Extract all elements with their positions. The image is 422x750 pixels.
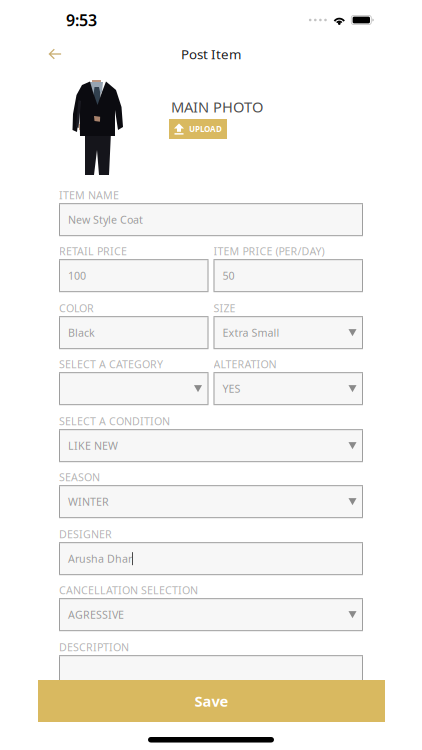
staticText: SELECT A CATEGORY	[59, 357, 163, 371]
button[interactable]: AGRESSIVE	[59, 598, 363, 631]
staticText: SIZE	[213, 301, 235, 315]
button[interactable]	[59, 372, 208, 405]
staticText: New Style Coat	[68, 213, 143, 227]
staticText: Black	[68, 326, 95, 340]
button[interactable]: Save	[38, 680, 385, 722]
button[interactable]: WINTER	[59, 485, 363, 518]
staticText: YES	[222, 382, 240, 396]
button[interactable]: LIKE NEW	[59, 429, 363, 462]
staticText: ITEM NAME	[59, 188, 119, 202]
staticText: COLOR	[59, 301, 94, 315]
button[interactable]: Extra Small	[213, 316, 363, 349]
staticText: ITEM PRICE (PER/DAY)	[213, 244, 324, 258]
staticText: LIKE NEW	[68, 439, 118, 453]
staticText: RETAIL PRICE	[59, 244, 127, 258]
button[interactable]	[59, 655, 363, 688]
button[interactable]: Back	[40, 41, 70, 67]
staticText: ALTERATION	[213, 357, 276, 371]
button[interactable]: Arusha Dhar	[59, 542, 363, 575]
staticText: Extra Small	[222, 326, 279, 340]
staticText: SELECT A CONDITION	[59, 414, 170, 428]
staticText: Post Item	[181, 45, 241, 63]
staticText: SEASON	[59, 470, 100, 484]
staticText: DESIGNER	[59, 527, 112, 541]
button[interactable]: YES	[213, 372, 363, 405]
staticText: UPLOAD	[189, 124, 222, 134]
button[interactable]: Black	[59, 316, 208, 349]
staticText: CANCELLATION SELECTION	[59, 583, 198, 597]
button[interactable]: 50	[213, 259, 363, 292]
button[interactable]: 100	[59, 259, 208, 292]
staticText: Save	[194, 691, 228, 711]
staticText: Arusha Dhar	[68, 552, 132, 566]
staticText: MAIN PHOTO	[171, 97, 263, 116]
staticText: 100	[68, 269, 86, 283]
staticText: WINTER	[68, 495, 109, 509]
button[interactable]: New Style Coat	[59, 203, 363, 236]
staticText: DESCRIPTION	[59, 640, 129, 654]
staticText: 50	[222, 269, 234, 283]
staticText: 9:53	[66, 9, 97, 31]
button[interactable]: UPLOAD	[169, 119, 227, 139]
staticText: AGRESSIVE	[68, 608, 124, 622]
